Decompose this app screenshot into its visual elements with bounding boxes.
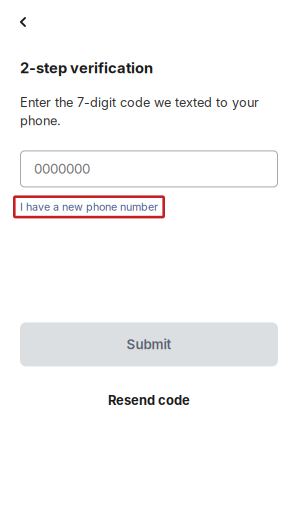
staticText: Submit (126, 336, 171, 352)
button[interactable]: I have a new phone number (13, 195, 165, 218)
button[interactable]: Back (8, 8, 38, 36)
button[interactable]: Submit (20, 322, 278, 366)
staticText: 2-step verification (20, 59, 153, 77)
staticText: I have a new phone number (20, 200, 158, 213)
staticText: Resend code (108, 393, 190, 408)
staticText: phone. (20, 113, 61, 128)
staticText: 0000000 (34, 161, 90, 177)
staticText: Enter the 7-digit code we texted to your (20, 95, 259, 110)
button[interactable]: Resend code (20, 389, 278, 411)
